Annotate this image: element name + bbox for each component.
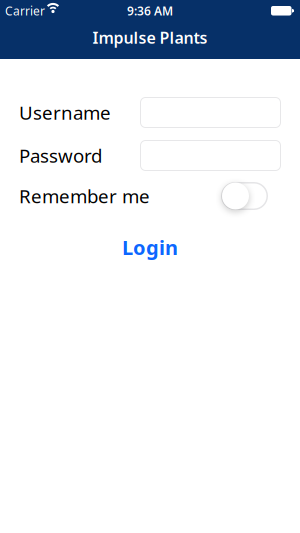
staticText: Remember me: [19, 184, 150, 208]
staticText: Carrier: [5, 3, 45, 19]
button[interactable]: Login: [122, 234, 178, 261]
button[interactable]: Password: [140, 140, 281, 171]
staticText: Username: [19, 100, 111, 125]
staticText: 9:36 AM: [127, 3, 173, 19]
staticText: Impulse Plants: [92, 27, 207, 48]
button[interactable]: Remember me: [221, 182, 268, 210]
button[interactable]: Username: [140, 97, 281, 128]
staticText: Login: [122, 234, 178, 261]
staticText: Password: [19, 143, 102, 168]
